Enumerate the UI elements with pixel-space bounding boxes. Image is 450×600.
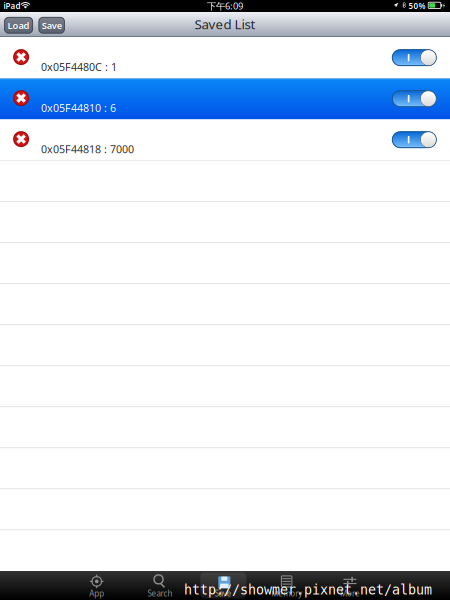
button[interactable]: 0x05F44818 : 7000 <box>0 119 450 160</box>
button[interactable]: 0x05F4480C : 1 <box>0 37 450 78</box>
staticText: More <box>340 588 360 599</box>
button[interactable]: 0x05F44810 : 6 <box>0 78 450 119</box>
staticText: 50% <box>409 1 426 11</box>
staticText: http://showmer.pixnet.net/album <box>184 582 432 597</box>
button[interactable]: Load <box>5 17 33 33</box>
staticText: 0x05F44810 : 6 <box>41 101 116 115</box>
staticText: Memory <box>271 588 302 599</box>
button[interactable]: App <box>65 571 128 600</box>
staticText: Search <box>147 588 172 599</box>
staticText: 0x05F44818 : 7000 <box>41 142 134 156</box>
button[interactable]: Save <box>192 571 255 600</box>
staticText: Saved List <box>194 15 255 33</box>
staticText: Load <box>8 19 30 31</box>
staticText: Save <box>42 19 62 31</box>
button[interactable]: Save <box>39 17 64 33</box>
button[interactable]: Memory <box>255 571 318 600</box>
button[interactable]: More <box>318 571 382 600</box>
button[interactable]: Search <box>128 571 192 600</box>
staticText: Save <box>215 588 232 599</box>
staticText: 0x05F4480C : 1 <box>41 60 117 74</box>
staticText: App <box>89 588 104 599</box>
staticText: 下午6:09 <box>207 0 243 12</box>
staticText: iPad <box>3 1 20 11</box>
